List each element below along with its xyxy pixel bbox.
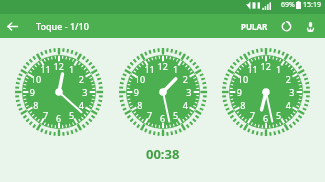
staticText: 69%: [281, 0, 295, 10]
button[interactable]: Back: [0, 14, 24, 38]
staticText: PULAR: [241, 21, 268, 32]
staticText: Toque - 1/10: [36, 20, 89, 32]
staticText: 15:19: [303, 0, 321, 10]
button[interactable]: Restart: [274, 14, 298, 38]
button[interactable]: PULAR: [235, 16, 274, 37]
staticText: 00:38: [146, 145, 180, 163]
button[interactable]: Microphone: [298, 14, 322, 38]
